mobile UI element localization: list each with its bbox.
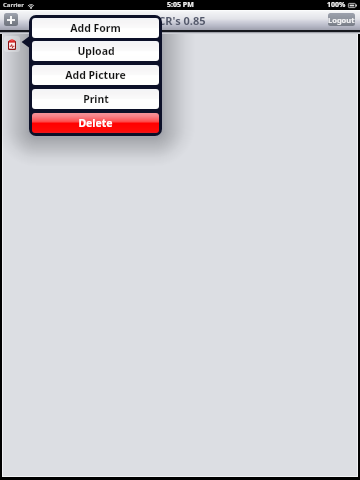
button[interactable]: Upload <box>32 41 159 61</box>
staticText: Print <box>83 92 109 106</box>
button[interactable]: Add Form <box>32 18 159 38</box>
button[interactable]: Records <box>4 36 20 52</box>
staticText: Carrier <box>3 1 24 9</box>
staticText: 100% <box>327 0 346 10</box>
staticText: 5:05 PM <box>167 0 194 10</box>
button[interactable]: Print <box>32 89 159 109</box>
staticText: ICR's 0.85 <box>154 13 206 28</box>
button[interactable]: Logout <box>328 13 355 26</box>
staticText: Delete <box>78 116 113 130</box>
staticText: Upload <box>77 44 115 58</box>
button[interactable]: Add <box>4 13 18 26</box>
staticText: Add Picture <box>65 68 126 82</box>
staticText: Add Form <box>70 21 121 35</box>
staticText: Logout <box>328 15 355 25</box>
button[interactable]: Delete <box>32 113 159 133</box>
button[interactable]: Add Picture <box>32 65 159 85</box>
